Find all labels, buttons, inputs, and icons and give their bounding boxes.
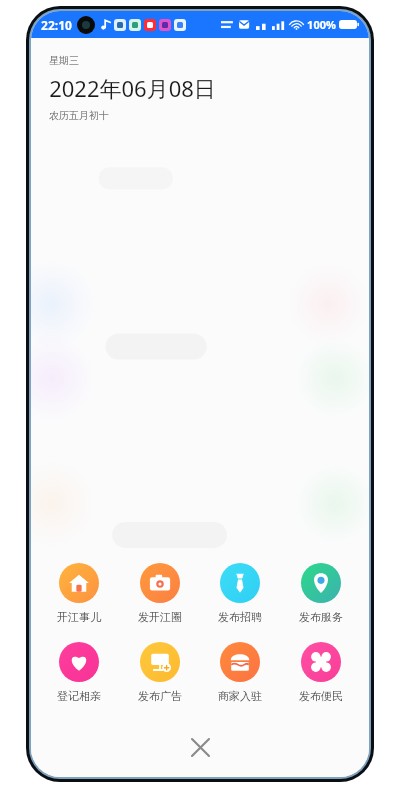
button[interactable]: 发布招聘: [200, 561, 280, 626]
button[interactable]: 开江事儿: [39, 561, 119, 626]
staticText: 发布招聘: [218, 610, 262, 624]
staticText: 发布服务: [299, 610, 343, 624]
staticText: 星期三: [49, 54, 79, 67]
staticText: 登记相亲: [57, 689, 101, 703]
staticText: 发布便民: [299, 689, 343, 703]
staticText: 发开江圈: [138, 610, 182, 624]
staticText: 2022年06月08日: [49, 73, 216, 103]
button[interactable]: 发布广告: [120, 640, 200, 705]
staticText: 农历五月初十: [49, 109, 109, 122]
staticText: 商家入驻: [218, 689, 262, 703]
button[interactable]: 关闭: [180, 727, 220, 767]
staticText: 开江事儿: [57, 610, 101, 624]
button[interactable]: 发布便民: [281, 640, 361, 705]
button[interactable]: 登记相亲: [39, 640, 119, 705]
staticText: 发布广告: [138, 689, 182, 703]
button[interactable]: 发开江圈: [120, 561, 200, 626]
button[interactable]: 商家入驻: [200, 640, 280, 705]
button[interactable]: 发布服务: [281, 561, 361, 626]
staticText: 100%: [307, 17, 336, 32]
staticText: 22:10: [41, 17, 72, 33]
